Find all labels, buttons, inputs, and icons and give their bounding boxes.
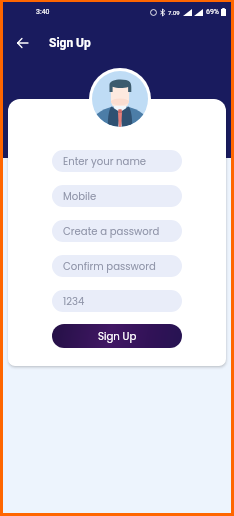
staticText: 1234	[63, 294, 85, 308]
staticText: Create a password	[63, 224, 160, 238]
button[interactable]: Back	[11, 32, 33, 54]
staticText: Sign Up	[49, 36, 91, 50]
button[interactable]: 1234	[52, 290, 182, 312]
staticText: 69%	[206, 8, 219, 16]
button[interactable]: Sign Up	[52, 324, 182, 348]
staticText: 3:40	[36, 8, 50, 16]
staticText: 7.09	[168, 9, 180, 16]
button[interactable]: Confirm password	[52, 255, 182, 277]
button[interactable]: Create a password	[52, 220, 182, 242]
button[interactable]: Mobile	[52, 185, 182, 207]
staticText: Mobile	[63, 189, 97, 203]
staticText: Enter your name	[63, 154, 147, 168]
button[interactable]: Enter your name	[52, 150, 182, 172]
staticText: Sign Up	[98, 329, 137, 343]
staticText: Confirm password	[63, 259, 156, 273]
